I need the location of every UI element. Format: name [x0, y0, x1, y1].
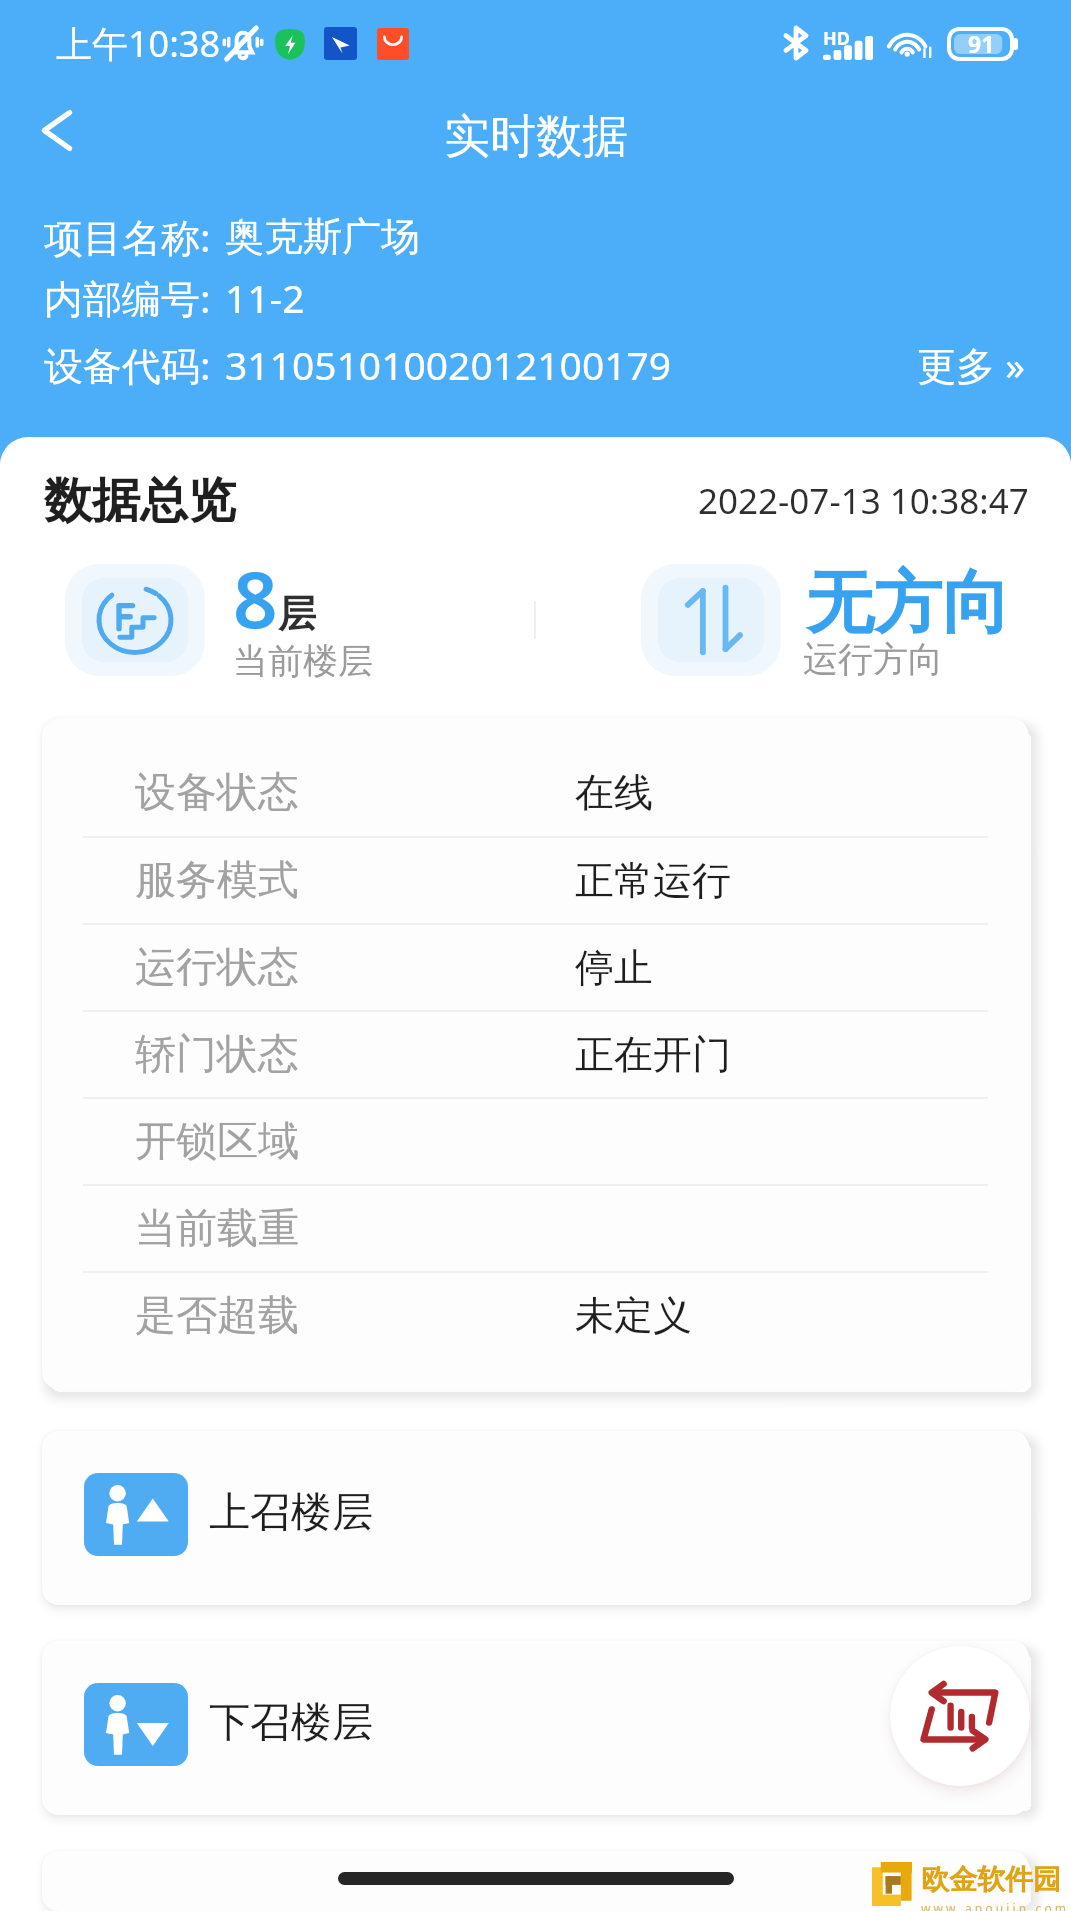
staticText: 上召楼层 [209, 1487, 373, 1539]
staticText: 层 [278, 590, 316, 638]
staticText: 内部编号: [44, 271, 211, 324]
staticText: 未定义 [575, 1291, 692, 1340]
button[interactable]: 上召楼层 [42, 1431, 1029, 1605]
button[interactable] [600, 545, 1071, 695]
button[interactable]: 下召楼层 [42, 1641, 1029, 1815]
staticText: 服务模式 [135, 855, 299, 907]
staticText: 更多 » [917, 338, 1025, 391]
staticText: 设备状态 [135, 767, 299, 819]
staticText: 设备代码: [44, 338, 211, 391]
button[interactable]: Back [14, 88, 98, 172]
button[interactable]: Refresh data [890, 1646, 1030, 1786]
button[interactable]: 轿门状态 [42, 1012, 1029, 1097]
button[interactable]: 服务模式 [42, 838, 1029, 923]
button[interactable]: 运行状态 [42, 925, 1029, 1010]
staticText: 是否超载 [135, 1290, 299, 1342]
button[interactable]: 更多 » [901, 332, 1025, 397]
button[interactable]: 是否超载 [42, 1273, 1029, 1358]
button[interactable]: 当前载重 [42, 1186, 1029, 1271]
staticText: 欧金软件园 [921, 1862, 1061, 1897]
staticText: 8 [233, 545, 278, 651]
staticText: 正在开门 [575, 1030, 731, 1079]
button[interactable] [0, 545, 470, 695]
staticText: 11-2 [225, 271, 305, 324]
staticText: 下召楼层 [209, 1697, 373, 1749]
staticText: 项目名称: [44, 210, 211, 263]
staticText: 实时数据 [444, 108, 628, 166]
button[interactable]: 设备状态 [42, 749, 1029, 836]
staticText: 当前载重 [135, 1203, 299, 1255]
staticText: 上午10:38 [56, 19, 221, 68]
staticText: 数据总览 [44, 471, 236, 531]
staticText: 奥克斯广场 [225, 212, 420, 261]
staticText: 当前楼层 [233, 639, 373, 683]
staticText: 停止 [575, 943, 653, 992]
staticText: 运行状态 [135, 942, 299, 994]
staticText: w w w . a p o u j i n . c o m [921, 1900, 1067, 1911]
button[interactable]: 开锁区域 [42, 1099, 1029, 1184]
staticText: 31105101002012100179 [225, 338, 672, 391]
button[interactable] [42, 1851, 1029, 1911]
staticText: 91 [968, 28, 995, 59]
staticText: 轿门状态 [135, 1029, 299, 1081]
staticText: 在线 [575, 768, 653, 817]
staticText: 无方向 [806, 561, 1010, 647]
staticText: 运行方向 [803, 637, 943, 681]
staticText: 正常运行 [575, 856, 731, 905]
staticText: 开锁区域 [135, 1116, 299, 1168]
staticText: HD [823, 26, 850, 51]
staticText: 2022-07-13 10:38:47 [698, 477, 1029, 525]
